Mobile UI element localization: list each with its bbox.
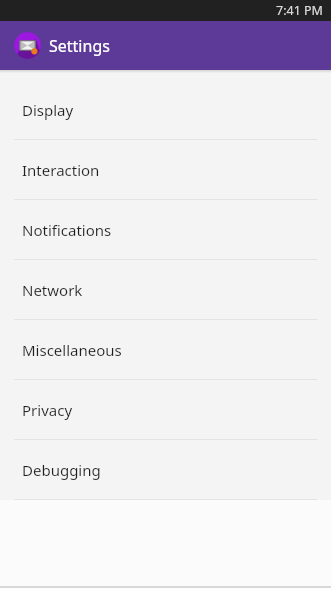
staticText: Settings [49,35,110,57]
staticText: Network [22,280,83,300]
staticText: Interaction [22,160,100,180]
staticText: Display [22,100,74,120]
staticText: Notifications [22,220,112,240]
staticText: Miscellaneous [22,340,122,360]
button[interactable]: Miscellaneous [0,320,331,380]
button[interactable]: Debugging [0,440,331,500]
staticText: Privacy [22,400,73,420]
button[interactable]: Display [0,80,331,140]
button[interactable]: Notifications [0,200,331,260]
button[interactable]: Privacy [0,380,331,440]
staticText: Debugging [22,460,101,480]
other: App icon [14,32,41,59]
button[interactable]: Interaction [0,140,331,200]
staticText: 7:41 PM [276,2,323,19]
button[interactable]: Network [0,260,331,320]
